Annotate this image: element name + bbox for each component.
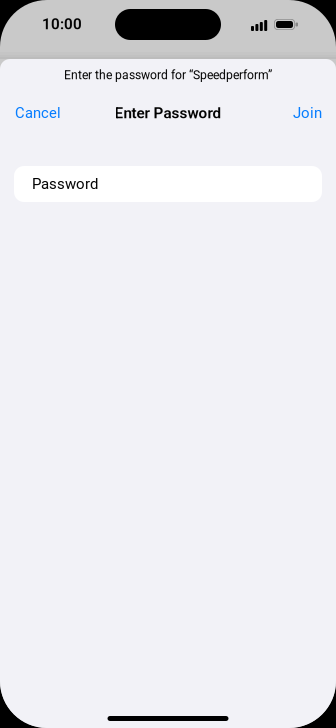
staticText: Join — [293, 104, 322, 122]
button[interactable]: Join — [262, 96, 336, 130]
staticText: Cancel — [15, 104, 61, 122]
button[interactable]: Password — [14, 166, 322, 202]
button[interactable]: Cancel — [0, 96, 89, 130]
staticText: 10:00 — [42, 15, 82, 33]
staticText: Enter the password for “Speedperform” — [64, 68, 272, 82]
staticText: Enter Password — [114, 104, 221, 122]
staticText: Password — [32, 175, 98, 193]
